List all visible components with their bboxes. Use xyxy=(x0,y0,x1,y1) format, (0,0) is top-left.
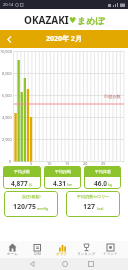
staticText: 平均消費カロリー xyxy=(77,194,110,199)
staticText: グラフ xyxy=(56,252,68,257)
staticText: 46.0 xyxy=(94,179,107,188)
staticText: 20:14 xyxy=(3,2,14,7)
button[interactable] xyxy=(85,258,128,270)
staticText: 平均歩数 xyxy=(14,169,30,174)
staticText: 2020年 2月 xyxy=(46,34,82,44)
staticText: 平均距離 xyxy=(55,169,71,174)
staticText: OKAZAKI xyxy=(24,13,69,27)
button[interactable]: ホーム xyxy=(0,243,25,257)
staticText: 20 xyxy=(83,161,88,166)
staticText: km xyxy=(66,182,73,187)
staticText: ホーム xyxy=(7,252,18,257)
staticText: 8,000 xyxy=(2,71,12,76)
button[interactable]: 平均距離 xyxy=(44,166,81,189)
staticText: 目標歩数 xyxy=(104,94,121,99)
staticText: kcal xyxy=(96,206,104,211)
staticText: 4,877 xyxy=(11,179,28,188)
button[interactable]: グラフ xyxy=(50,243,74,257)
staticText: 15 xyxy=(65,161,70,166)
staticText: mmHg xyxy=(36,206,49,211)
staticText: まめぽ xyxy=(77,15,105,26)
staticText: kg xyxy=(107,182,112,187)
staticText: 歩 xyxy=(28,182,33,187)
button[interactable]: 記録 xyxy=(25,243,50,257)
staticText: 10,000 xyxy=(0,49,12,54)
button[interactable] xyxy=(42,258,85,270)
staticText: 0 xyxy=(9,159,12,164)
button[interactable] xyxy=(0,258,42,270)
staticText: 血圧(最新) xyxy=(22,194,41,199)
staticText: 25 xyxy=(101,161,106,166)
staticText: 平均体重 xyxy=(95,169,111,174)
button[interactable]: 平均体重 xyxy=(84,166,121,189)
button[interactable]: 平均消費カロリー xyxy=(66,191,120,217)
staticText: 5 xyxy=(30,161,33,166)
staticText: 4,000 xyxy=(2,115,12,120)
button[interactable]: ランキング xyxy=(74,243,98,257)
button[interactable]: イベント xyxy=(98,243,122,257)
staticText: 127 xyxy=(83,202,96,212)
staticText: 4.31 xyxy=(53,179,66,188)
staticText: 2,000 xyxy=(2,137,12,142)
staticText: ランキング xyxy=(77,252,96,257)
staticText: 10 xyxy=(47,161,52,166)
button[interactable]: 平均歩数 xyxy=(3,166,41,189)
staticText: 120/75 xyxy=(13,202,36,212)
staticText: 6,000 xyxy=(2,93,12,98)
staticText: イベント xyxy=(103,252,118,257)
staticText: 記録 xyxy=(34,252,42,257)
button[interactable]: 血圧(最新) xyxy=(4,191,58,217)
staticText: ♥ xyxy=(69,16,77,25)
button[interactable] xyxy=(4,34,14,44)
